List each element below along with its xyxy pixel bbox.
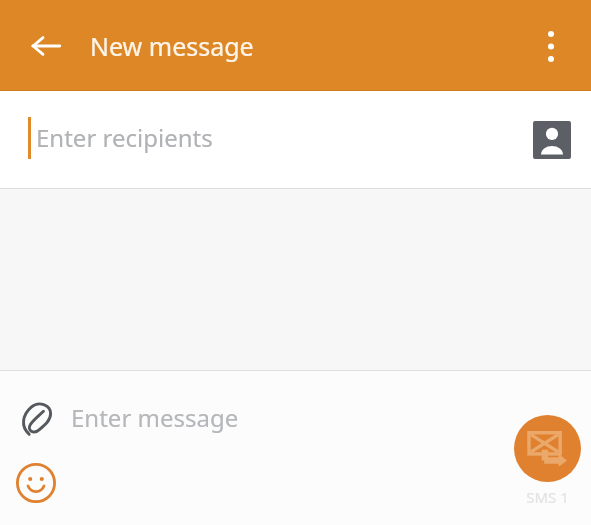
- staticText: SMS 1: [514, 487, 581, 507]
- staticText: New message: [90, 29, 254, 63]
- button[interactable]: Enter recipients: [0, 91, 591, 188]
- button[interactable]: More options: [527, 22, 575, 70]
- button[interactable]: Send message: [514, 415, 581, 482]
- button[interactable]: Enter message: [71, 401, 239, 434]
- button[interactable]: Back: [22, 22, 70, 70]
- button[interactable]: Choose contact: [533, 121, 571, 159]
- button[interactable]: Insert emoji: [8, 455, 64, 511]
- button[interactable]: Attach file: [8, 391, 64, 447]
- staticText: Enter recipients: [36, 121, 213, 154]
